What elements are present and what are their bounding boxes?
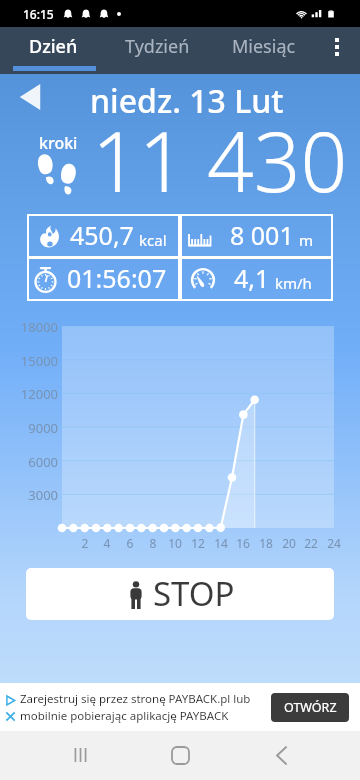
staticText: mobilnie pobierając aplikację PAYBACK bbox=[20, 708, 229, 724]
button[interactable]: Close ad bbox=[3, 709, 18, 724]
staticText: 24 bbox=[324, 535, 344, 551]
staticText: 4,1 bbox=[234, 261, 270, 295]
staticText: Dzień bbox=[29, 34, 78, 59]
staticText: 01:56:07 bbox=[67, 261, 167, 295]
staticText: 12000 bbox=[0, 385, 58, 403]
button[interactable]: STOP bbox=[26, 568, 334, 620]
button[interactable]: Back bbox=[259, 733, 303, 777]
staticText: 450,7 bbox=[70, 218, 134, 252]
staticText: 4 bbox=[97, 535, 117, 551]
button[interactable]: 8 001 bbox=[180, 214, 333, 258]
staticText: OTWÓRZ bbox=[284, 699, 337, 716]
staticText: 16:15 bbox=[23, 6, 54, 22]
staticText: 18000 bbox=[0, 318, 58, 336]
staticText: 2 bbox=[75, 535, 95, 551]
staticText: STOP bbox=[153, 571, 235, 616]
staticText: 3000 bbox=[0, 486, 58, 504]
staticText: Zarejestruj się przez stronę PAYBACK.pl … bbox=[20, 691, 251, 707]
button[interactable]: 01:56:07 bbox=[27, 257, 180, 301]
button[interactable]: Dzień bbox=[8, 27, 98, 70]
button[interactable]: More options bbox=[313, 27, 360, 70]
staticText: 8 001 bbox=[230, 218, 294, 252]
button[interactable]: 4,1 bbox=[180, 257, 333, 301]
button[interactable]: Ad choices bbox=[3, 693, 18, 708]
staticText: kroki bbox=[39, 132, 78, 154]
staticText: 16 bbox=[233, 535, 253, 551]
staticText: niedz. 13 Lut bbox=[90, 79, 284, 123]
staticText: 6 bbox=[120, 535, 140, 551]
button[interactable]: Home bbox=[158, 733, 202, 777]
staticText: 11 430 bbox=[92, 104, 348, 194]
staticText: 8 bbox=[143, 535, 163, 551]
staticText: Tydzień bbox=[125, 34, 190, 59]
staticText: 9000 bbox=[0, 419, 58, 437]
button[interactable]: Tydzień bbox=[114, 27, 200, 70]
staticText: 22 bbox=[301, 535, 321, 551]
button[interactable]: OTWÓRZ bbox=[271, 693, 349, 722]
staticText: kcal bbox=[139, 230, 167, 250]
staticText: 12 bbox=[188, 535, 208, 551]
staticText: Miesiąc bbox=[232, 34, 296, 59]
staticText: 10 bbox=[165, 535, 185, 551]
button[interactable]: Previous day bbox=[14, 80, 46, 114]
staticText: 15000 bbox=[0, 352, 58, 370]
button[interactable]: 450,7 bbox=[27, 214, 180, 258]
staticText: 18 bbox=[256, 535, 276, 551]
staticText: 20 bbox=[279, 535, 299, 551]
button[interactable]: Recent apps bbox=[58, 733, 102, 777]
staticText: m bbox=[299, 230, 314, 250]
staticText: 14 bbox=[211, 535, 231, 551]
staticText: km/h bbox=[275, 273, 312, 293]
staticText: 6000 bbox=[0, 453, 58, 471]
button[interactable]: Miesiąc bbox=[221, 27, 307, 70]
